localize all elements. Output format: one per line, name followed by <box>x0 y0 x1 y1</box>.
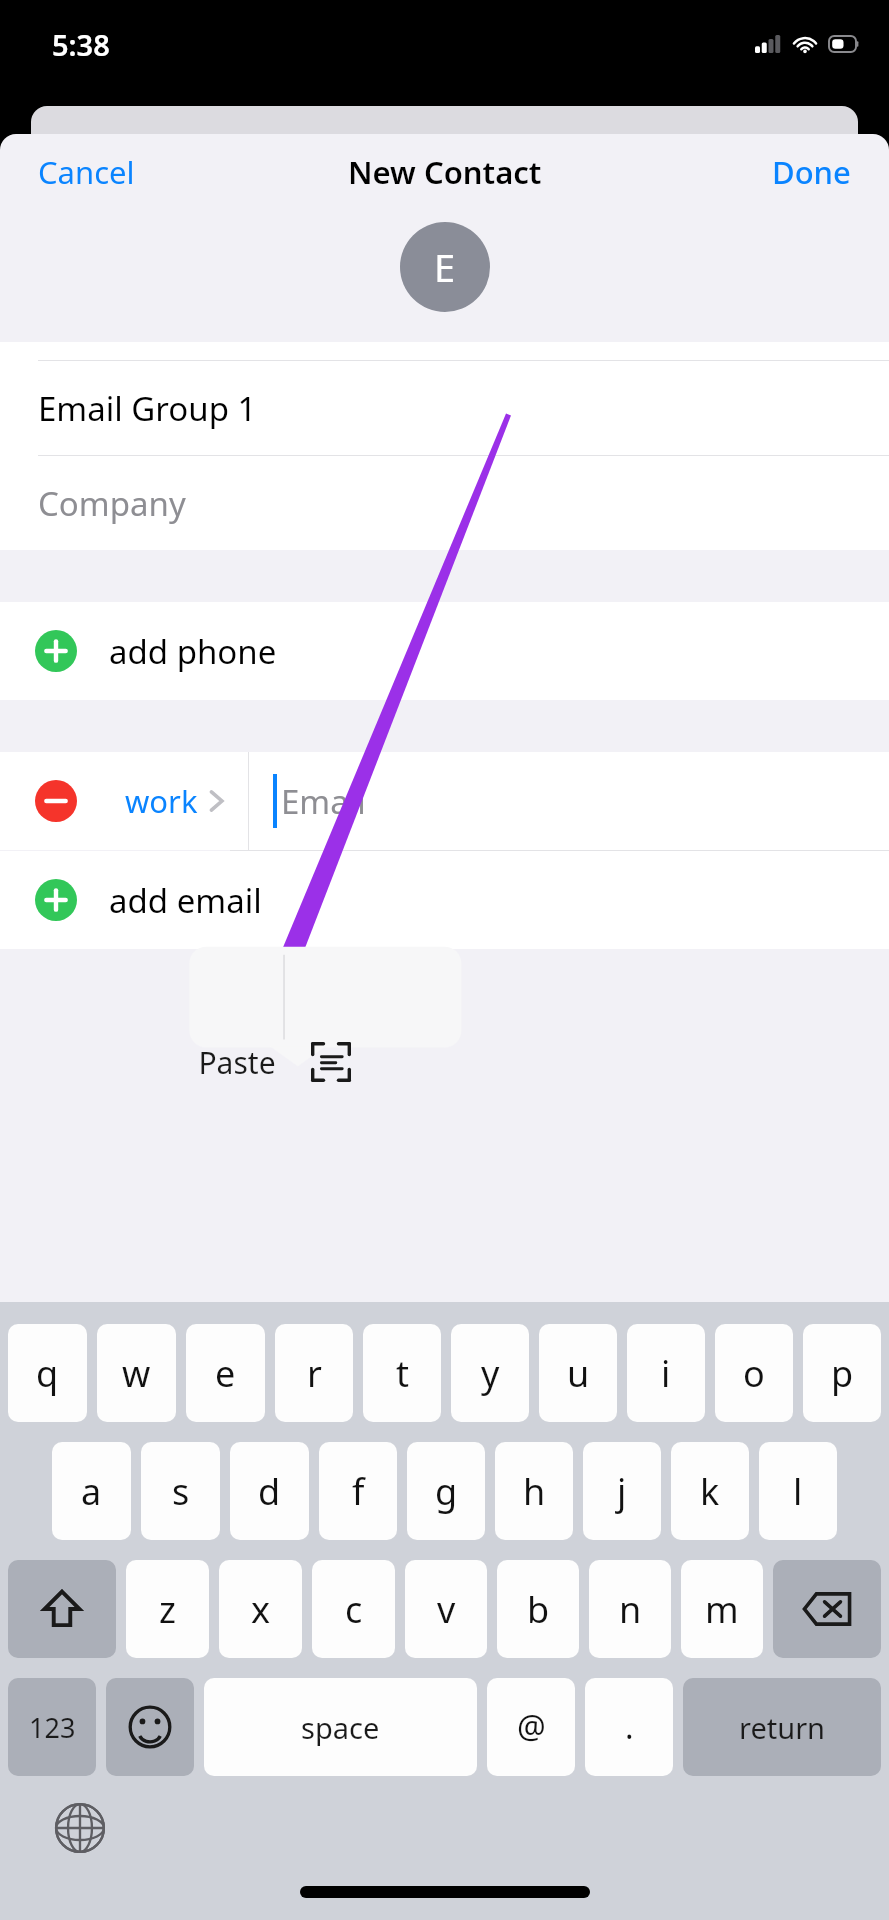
button[interactable]: @ <box>487 1678 575 1776</box>
button[interactable]: s <box>141 1442 220 1540</box>
button[interactable]: k <box>671 1442 749 1540</box>
button[interactable]: f <box>319 1442 397 1540</box>
staticText: j <box>617 1467 627 1516</box>
button[interactable]: Company <box>0 456 889 550</box>
staticText: space <box>301 1708 380 1747</box>
staticText: q <box>36 1349 59 1398</box>
button[interactable]: q <box>8 1324 87 1422</box>
staticText: Email <box>281 779 366 824</box>
staticText: Email Group 1 <box>38 386 257 431</box>
button[interactable]: o <box>715 1324 793 1422</box>
button[interactable]: Email Group 1 <box>0 361 889 455</box>
button[interactable]: i <box>627 1324 705 1422</box>
button[interactable]: Next keyboard <box>50 1798 110 1858</box>
staticText: Cancel <box>38 151 135 193</box>
button[interactable]: . <box>585 1678 673 1776</box>
staticText: Paste <box>198 1042 276 1083</box>
staticText: s <box>172 1467 190 1516</box>
other: Add <box>35 630 77 672</box>
button[interactable]: return <box>683 1678 881 1776</box>
staticText: l <box>793 1467 803 1516</box>
button[interactable]: Add photo <box>400 222 490 312</box>
button[interactable]: Add <box>0 851 889 949</box>
staticText: t <box>396 1349 409 1398</box>
staticText: v <box>437 1585 456 1634</box>
button[interactable]: h <box>495 1442 573 1540</box>
staticText: 5:38 <box>52 25 110 64</box>
staticText: o <box>743 1349 765 1398</box>
button[interactable]: Delete <box>35 780 77 822</box>
button[interactable]: Add <box>0 602 889 700</box>
staticText: a <box>81 1467 102 1516</box>
button[interactable]: x <box>219 1560 302 1658</box>
button[interactable]: g <box>407 1442 485 1540</box>
button[interactable]: v <box>405 1560 487 1658</box>
staticText: New Contact <box>348 151 542 193</box>
staticText: d <box>258 1467 281 1516</box>
button[interactable]: Scan text <box>288 1008 374 1116</box>
button[interactable]: z <box>126 1560 209 1658</box>
staticText: y <box>481 1349 500 1398</box>
staticText: p <box>831 1349 854 1398</box>
staticText: n <box>619 1585 642 1634</box>
staticText: e <box>215 1349 236 1398</box>
button[interactable]: c <box>312 1560 395 1658</box>
staticText: E <box>434 241 456 293</box>
button[interactable]: m <box>681 1560 763 1658</box>
button[interactable]: b <box>497 1560 579 1658</box>
staticText: @ <box>517 1705 546 1749</box>
button[interactable]: e <box>186 1324 265 1422</box>
staticText: k <box>700 1467 720 1516</box>
staticText: add email <box>109 878 262 923</box>
button[interactable]: r <box>275 1324 353 1422</box>
button[interactable]: n <box>589 1560 671 1658</box>
button[interactable]: work <box>125 780 224 822</box>
staticText: w <box>122 1349 151 1398</box>
staticText: add phone <box>109 629 277 674</box>
button[interactable]: w <box>97 1324 176 1422</box>
button[interactable]: t <box>363 1324 441 1422</box>
staticText: 123 <box>29 1709 76 1746</box>
staticText: h <box>523 1467 546 1516</box>
staticText: x <box>251 1585 271 1634</box>
button[interactable]: space <box>204 1678 477 1776</box>
staticText: m <box>705 1585 739 1634</box>
staticText: Done <box>772 151 851 193</box>
button[interactable]: d <box>230 1442 309 1540</box>
staticText: z <box>159 1585 176 1634</box>
staticText: i <box>661 1349 671 1398</box>
button[interactable]: Emoji <box>106 1678 194 1776</box>
button[interactable]: u <box>539 1324 617 1422</box>
staticText: f <box>352 1467 365 1516</box>
staticText: Company <box>38 481 186 526</box>
staticText: g <box>435 1467 458 1516</box>
button[interactable]: l <box>759 1442 837 1540</box>
button[interactable]: 123 <box>8 1678 96 1776</box>
staticText: . <box>625 1705 634 1749</box>
staticText: b <box>527 1585 550 1634</box>
other: Add <box>35 879 77 921</box>
button[interactable]: Shift <box>8 1560 116 1658</box>
button[interactable]: Backspace <box>773 1560 881 1658</box>
button[interactable]: Cancel <box>0 137 173 207</box>
button[interactable]: p <box>803 1324 881 1422</box>
button[interactable]: Done <box>734 137 889 207</box>
staticText: r <box>307 1349 322 1398</box>
button[interactable]: a <box>52 1442 131 1540</box>
button[interactable]: j <box>583 1442 661 1540</box>
staticText: c <box>345 1585 363 1634</box>
staticText: u <box>567 1349 590 1398</box>
staticText: return <box>739 1708 826 1747</box>
button[interactable]: y <box>451 1324 529 1422</box>
button[interactable]: Paste <box>190 1008 284 1116</box>
staticText: work <box>125 780 198 822</box>
